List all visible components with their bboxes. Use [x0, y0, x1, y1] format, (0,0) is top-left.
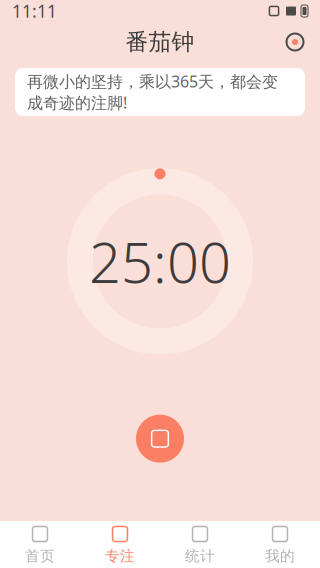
staticText: 番茄钟 — [125, 28, 194, 56]
button[interactable]: 再微小的坚持，乘以365天，都会变成奇迹的注脚! — [15, 68, 305, 116]
button[interactable]: 设置 — [278, 25, 312, 59]
staticText: 统计 — [185, 547, 215, 565]
button[interactable]: 专注 — [80, 521, 160, 568]
staticText: 首页 — [25, 547, 55, 565]
button[interactable]: 首页 — [0, 521, 80, 568]
staticText: 我的 — [265, 547, 295, 565]
button[interactable]: 开始 — [128, 407, 192, 471]
staticText: 专注 — [105, 547, 135, 565]
button[interactable]: 我的 — [240, 521, 320, 568]
staticText: 11:11 — [12, 0, 57, 22]
staticText: 25:00 — [89, 224, 231, 299]
staticText: 再微小的坚持，乘以365天，都会变成奇迹的注脚! — [27, 71, 278, 113]
button[interactable]: 统计 — [160, 521, 240, 568]
